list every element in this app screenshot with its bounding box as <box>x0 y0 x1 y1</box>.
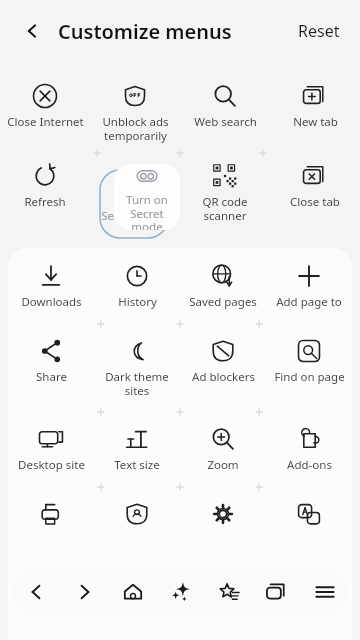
button[interactable]: Unblock ads temporarily <box>90 80 180 146</box>
staticText: Reset <box>298 20 340 42</box>
button[interactable]: Bookmarks <box>205 568 253 616</box>
button[interactable]: Text size <box>94 423 180 476</box>
staticText: Unblock ads temporarily <box>102 114 169 143</box>
button[interactable]: Zoom <box>180 423 266 476</box>
button[interactable]: QR code scanner <box>180 160 270 226</box>
button[interactable]: Home <box>109 568 157 616</box>
staticText: Add page to <box>276 294 342 310</box>
staticText: Text size <box>114 457 160 473</box>
staticText: Close Internet <box>7 114 84 130</box>
button[interactable] <box>266 498 352 551</box>
button[interactable]: Web search <box>180 80 270 133</box>
button[interactable]: Close tab <box>270 160 360 213</box>
staticText: Customize menus <box>58 18 232 45</box>
button[interactable]: Add-ons <box>266 423 352 476</box>
button[interactable]: Back <box>11 568 60 616</box>
button[interactable]: Tabs <box>253 568 301 616</box>
staticText: Desktop site <box>18 457 85 473</box>
button[interactable]: Saved pages <box>180 260 266 313</box>
staticText: Downloads <box>21 294 82 310</box>
button[interactable]: Desktop site <box>8 423 94 476</box>
button[interactable]: Refresh <box>0 160 90 213</box>
button[interactable]: History <box>94 260 180 313</box>
staticText: Add-ons <box>287 457 332 473</box>
button[interactable]: Forward <box>60 568 109 616</box>
button[interactable]: Turn on Secret mode <box>90 160 180 226</box>
button[interactable]: AI assistant <box>157 568 205 616</box>
button[interactable]: Turn on Secret mode <box>114 164 180 230</box>
staticText: Zoom <box>207 457 239 473</box>
staticText: Web search <box>194 114 257 130</box>
button[interactable]: Share <box>8 335 94 388</box>
button[interactable]: Add page to <box>266 260 352 313</box>
staticText: Ad blockers <box>192 369 255 385</box>
button[interactable]: Find on page <box>266 335 352 388</box>
button[interactable]: New tab <box>270 80 360 133</box>
button[interactable]: Menu <box>301 568 349 616</box>
staticText: Find on page <box>274 369 345 385</box>
staticText: Dark theme sites <box>105 369 169 398</box>
button[interactable]: Close Internet <box>0 80 90 133</box>
button[interactable] <box>8 498 94 551</box>
button[interactable] <box>94 498 180 551</box>
staticText: Turn on Secret mode <box>114 192 180 230</box>
button[interactable]: Back <box>12 11 52 51</box>
staticText: Saved pages <box>189 294 257 310</box>
staticText: History <box>118 294 157 310</box>
button[interactable] <box>180 498 266 551</box>
staticText: New tab <box>293 114 338 130</box>
button[interactable]: Downloads <box>8 260 94 313</box>
staticText: Refresh <box>24 194 66 210</box>
staticText: Turn on Secret mode <box>101 194 169 223</box>
button[interactable]: Reset <box>294 12 344 50</box>
button[interactable]: Ad blockers <box>180 335 266 388</box>
staticText: Close tab <box>290 194 340 210</box>
staticText: QR code scanner <box>202 194 248 223</box>
staticText: Share <box>36 369 67 385</box>
button[interactable]: Dark theme sites <box>94 335 180 401</box>
